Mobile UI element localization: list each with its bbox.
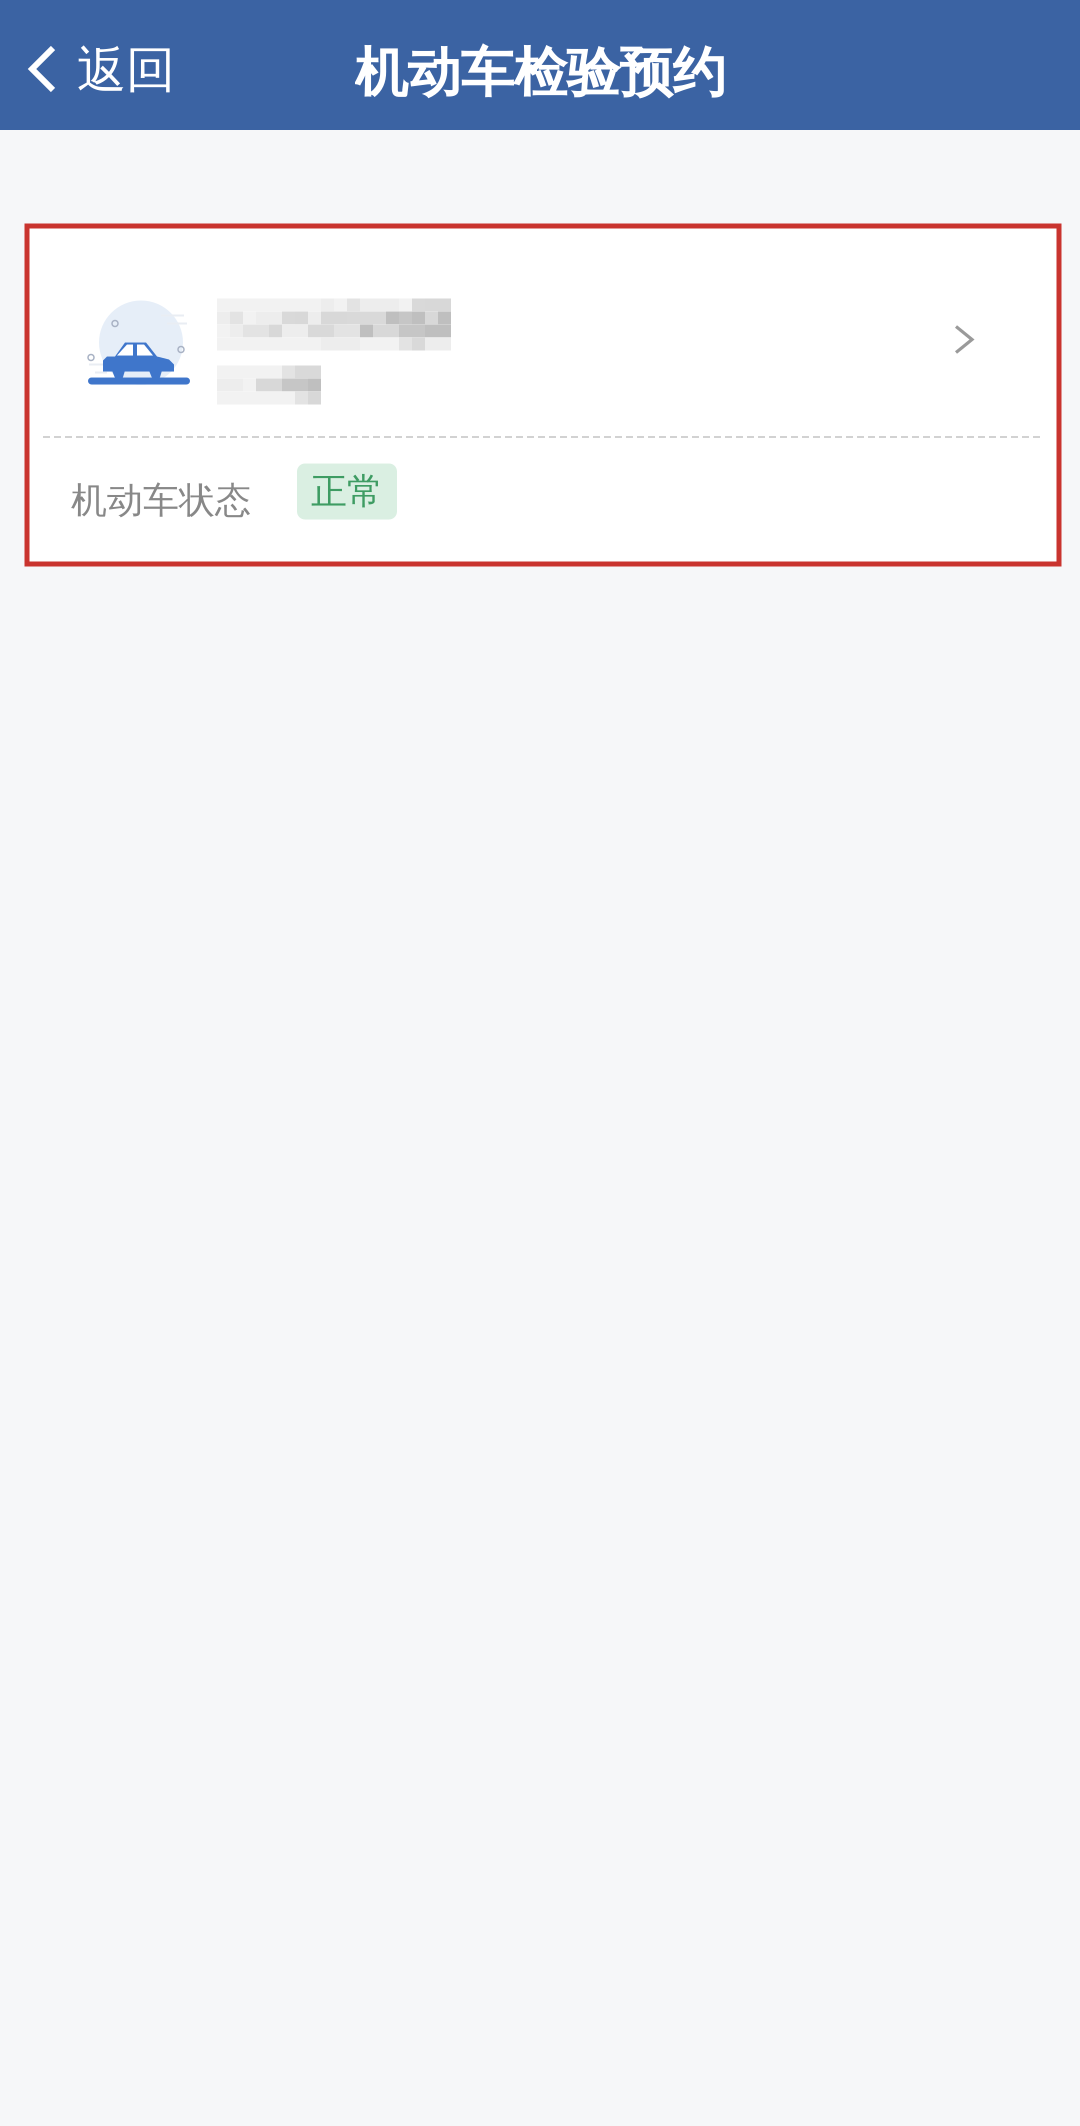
- staticText: 机动车检验预约: [354, 40, 725, 106]
- staticText: 机动车状态: [71, 478, 251, 523]
- staticText: 正常: [311, 469, 383, 514]
- staticText: 返回: [77, 40, 175, 100]
- button[interactable]: 机动车详情: [27, 227, 1059, 436]
- button[interactable]: 返回: [0, 0, 193, 130]
